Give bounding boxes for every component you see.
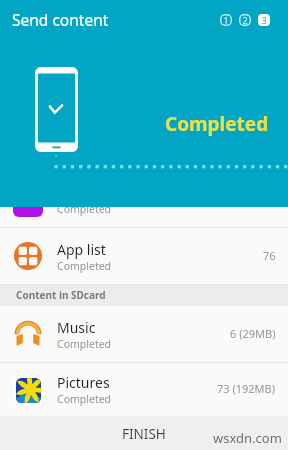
staticText: 76 [263,248,276,263]
other: Transfer complete [35,67,78,152]
staticText: Pictures [57,373,110,392]
staticText: Content in SDcard [16,288,106,302]
button[interactable]: Music [0,306,288,362]
staticText: Completed [57,259,112,273]
staticText: App list [57,240,106,259]
staticText: Completed [57,337,112,351]
button[interactable]: Step 3 [258,14,270,26]
staticText: 2 [242,14,248,26]
button[interactable]: Step 2 [239,14,251,26]
button[interactable]: Pictures [0,363,288,416]
staticText: 73 (192MB) [217,381,276,396]
staticText: 6 (29MB) [230,326,276,341]
staticText: Music [57,318,96,337]
button[interactable]: Videos [0,171,288,227]
staticText: Send content [12,9,109,30]
button[interactable]: FINISH [0,416,288,450]
button[interactable]: App list [0,228,288,284]
staticText: wsxdn.com [213,429,282,447]
staticText: Completed [165,111,269,137]
staticText: Completed [57,202,112,216]
staticText: Completed [57,392,112,406]
staticText: FINISH [122,425,166,443]
button[interactable]: Step 1 [220,14,232,26]
staticText: 3 [261,14,267,26]
staticText: 1 [223,14,229,26]
